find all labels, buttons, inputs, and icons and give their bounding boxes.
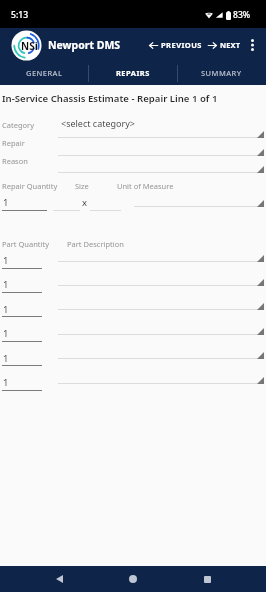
staticText: Category (2, 120, 34, 130)
staticText: Size (75, 181, 89, 191)
staticText: x (82, 196, 88, 209)
button[interactable]: REPAIRS (88, 62, 177, 85)
staticText: In-Service Chassis Estimate - Repair Lin… (2, 92, 218, 105)
button[interactable]: More options (242, 34, 263, 56)
staticText: Part Description (67, 239, 124, 249)
staticText: Unit of Measure (117, 181, 174, 191)
staticText: NEXT (220, 40, 241, 50)
button[interactable]: SUMMARY (177, 62, 266, 85)
staticText: Repair (2, 138, 25, 148)
staticText: Reason (2, 156, 28, 166)
button[interactable]: NEXT (207, 34, 242, 56)
staticText: 1 (3, 303, 9, 316)
button[interactable]: Recent apps (192, 566, 222, 592)
staticText: 1 (3, 376, 9, 389)
staticText: 1 (3, 352, 9, 365)
staticText: 1 (3, 278, 9, 291)
button[interactable]: Home (118, 566, 148, 592)
staticText: 1 (3, 196, 9, 209)
staticText: 83% (233, 9, 251, 21)
staticText: REPAIRS (116, 68, 150, 78)
button[interactable]: Back (44, 566, 74, 592)
staticText: 5:13 (11, 9, 29, 21)
staticText: Part Quantity (2, 239, 50, 249)
staticText: Repair Quantity (2, 181, 58, 191)
staticText: NSi (21, 39, 38, 53)
staticText: <select category> (61, 117, 135, 129)
button[interactable]: PREVIOUS (148, 34, 203, 56)
staticText: SUMMARY (201, 68, 242, 78)
staticText: 1 (3, 327, 9, 340)
staticText: Newport DMS (48, 38, 121, 52)
staticText: 1 (3, 254, 9, 267)
staticText: GENERAL (26, 68, 63, 78)
staticText: PREVIOUS (161, 40, 202, 50)
button[interactable]: GENERAL (0, 62, 88, 85)
